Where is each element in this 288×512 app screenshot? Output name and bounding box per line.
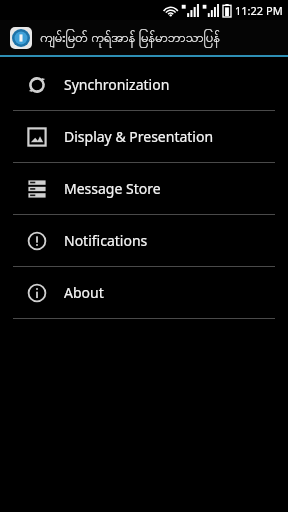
button[interactable]: Synchronization: [0, 59, 288, 110]
button[interactable]: Display & Presentation: [0, 111, 288, 162]
staticText: ကျမ်းမြတ် ကုရ်အာန် မြန်မာဘာသာပြန်: [40, 28, 220, 48]
staticText: About: [64, 283, 104, 302]
staticText: 11:22 PM: [235, 3, 283, 18]
button[interactable]: Message Store: [0, 163, 288, 214]
button[interactable]: Notifications: [0, 215, 288, 266]
staticText: Display & Presentation: [64, 127, 214, 146]
button[interactable]: About: [0, 267, 288, 318]
staticText: Synchronization: [64, 75, 170, 94]
staticText: Message Store: [64, 179, 161, 198]
staticText: Notifications: [64, 231, 148, 250]
